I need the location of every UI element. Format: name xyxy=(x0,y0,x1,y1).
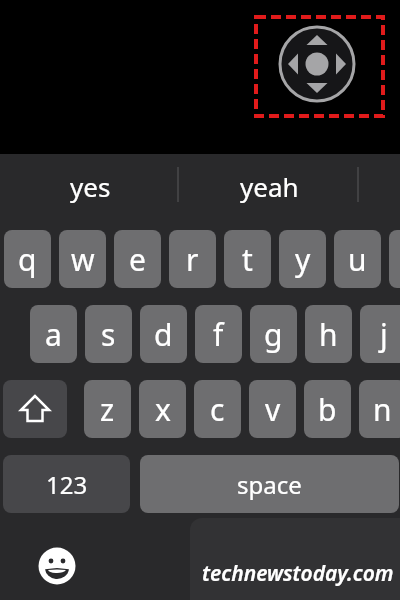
button[interactable] xyxy=(389,230,400,288)
button[interactable]: z xyxy=(84,380,131,438)
staticText: z xyxy=(100,389,115,430)
staticText: g xyxy=(264,314,283,355)
staticText: n xyxy=(373,389,392,430)
staticText: technewstoday.com xyxy=(202,559,394,588)
button[interactable]: w xyxy=(59,230,106,288)
button[interactable]: x xyxy=(139,380,186,438)
staticText: t xyxy=(242,239,253,280)
staticText: w xyxy=(71,239,95,280)
staticText: e xyxy=(129,239,146,280)
staticText: d xyxy=(154,314,173,355)
staticText: c xyxy=(210,389,225,430)
button[interactable]: u xyxy=(334,230,381,288)
staticText: b xyxy=(318,389,337,430)
button[interactable]: space xyxy=(140,455,399,513)
staticText: a xyxy=(45,314,62,355)
button[interactable] xyxy=(3,380,67,438)
button[interactable]: yes xyxy=(40,166,140,206)
staticText: x xyxy=(155,389,171,430)
button[interactable]: e xyxy=(114,230,161,288)
staticText: s xyxy=(101,314,116,355)
staticText: space xyxy=(237,468,302,501)
staticText: q xyxy=(18,239,37,280)
button[interactable]: y xyxy=(279,230,326,288)
staticText: j xyxy=(380,314,388,355)
button[interactable]: a xyxy=(30,305,77,363)
button[interactable]: d xyxy=(140,305,187,363)
button[interactable]: yeah xyxy=(219,166,319,206)
button[interactable]: b xyxy=(304,380,351,438)
button[interactable]: f xyxy=(195,305,242,363)
button[interactable]: n xyxy=(359,380,400,438)
staticText: y xyxy=(295,239,311,280)
staticText: yes xyxy=(70,169,111,204)
staticText: yeah xyxy=(240,169,299,204)
button[interactable]: h xyxy=(305,305,352,363)
staticText: h xyxy=(319,314,338,355)
staticText: v xyxy=(265,389,281,430)
staticText: 123 xyxy=(46,468,88,501)
staticText: f xyxy=(213,314,224,355)
button[interactable]: r xyxy=(169,230,216,288)
button[interactable]: 123 xyxy=(3,455,130,513)
button[interactable]: t xyxy=(224,230,271,288)
button[interactable]: j xyxy=(360,305,400,363)
staticText: r xyxy=(186,239,199,280)
staticText: u xyxy=(348,239,367,280)
button[interactable]: v xyxy=(249,380,296,438)
button[interactable] xyxy=(37,546,77,586)
button[interactable]: q xyxy=(4,230,51,288)
button[interactable]: g xyxy=(250,305,297,363)
button[interactable]: s xyxy=(85,305,132,363)
button[interactable]: c xyxy=(194,380,241,438)
